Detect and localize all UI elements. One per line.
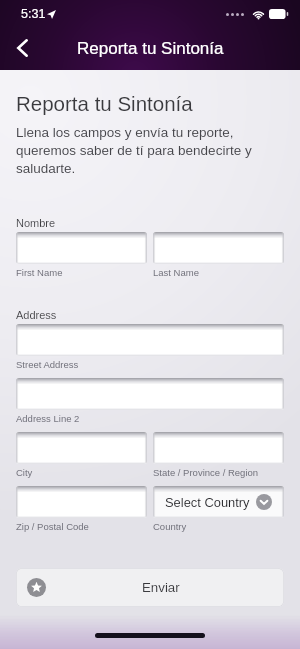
staticText: 5:31 — [21, 7, 46, 21]
staticText: Nombre — [16, 217, 56, 229]
staticText: Zip / Postal Code — [16, 521, 89, 532]
staticText: Reporta tu Sintonía — [16, 92, 193, 115]
button[interactable]: Text field — [16, 232, 147, 264]
staticText: First Name — [16, 267, 63, 278]
button[interactable]: Text field — [16, 432, 147, 464]
staticText: Address — [16, 309, 57, 321]
staticText: Address Line 2 — [16, 413, 80, 424]
staticText: State / Province / Region — [153, 467, 259, 478]
staticText: City — [16, 467, 33, 478]
staticText: Enviar — [142, 580, 180, 595]
button[interactable]: Text field — [153, 432, 284, 464]
staticText: Street Address — [16, 359, 79, 370]
staticText: Last Name — [153, 267, 199, 278]
button[interactable]: Enviar — [16, 568, 284, 607]
button[interactable]: Text field — [16, 378, 284, 410]
staticText: Select Country — [165, 495, 250, 509]
button[interactable]: Text field — [153, 232, 284, 264]
button[interactable]: Back — [0, 26, 44, 70]
staticText: Reporta tu Sintonía — [77, 39, 224, 58]
staticText: Country — [153, 521, 187, 532]
button[interactable]: Text field — [16, 486, 147, 518]
button[interactable]: Text field — [16, 324, 284, 356]
staticText: Llena los campos y envía tu reporte, que… — [16, 125, 252, 176]
button[interactable]: Select Country — [153, 486, 284, 518]
